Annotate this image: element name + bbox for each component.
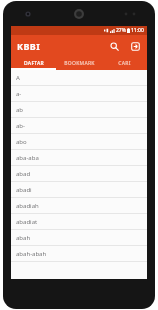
staticText: abah-abah xyxy=(16,250,47,258)
button[interactable]: ab- xyxy=(11,118,147,134)
button[interactable]: BOOKMARK xyxy=(57,56,102,70)
button[interactable]: abo xyxy=(11,134,147,150)
button[interactable]: abad xyxy=(11,166,147,182)
button[interactable]: abah-abah xyxy=(11,246,147,262)
staticText: ab xyxy=(16,106,24,114)
button[interactable]: a- xyxy=(11,86,147,102)
button[interactable]: abadiat xyxy=(11,214,147,230)
staticText: 27% xyxy=(116,27,126,34)
staticText: abah xyxy=(16,234,31,242)
staticText: abadiat xyxy=(16,218,38,226)
button[interactable]: Open entry xyxy=(128,39,142,53)
button[interactable]: abadiah xyxy=(11,198,147,214)
staticText: abo xyxy=(16,138,27,146)
button[interactable]: aba-aba xyxy=(11,150,147,166)
staticText: CARI xyxy=(118,60,131,67)
button[interactable]: DAFTAR xyxy=(11,56,57,70)
staticText: abadi xyxy=(16,186,32,194)
button[interactable]: CARI xyxy=(102,56,147,70)
staticText: abadiah xyxy=(16,202,39,210)
button[interactable]: ab xyxy=(11,102,147,118)
staticText: a- xyxy=(16,90,22,98)
staticText: KBBI xyxy=(17,40,41,52)
button[interactable]: abah xyxy=(11,230,147,246)
staticText: A xyxy=(16,74,20,82)
staticText: 11:00 xyxy=(131,27,144,34)
staticText: aba-aba xyxy=(16,154,39,162)
button[interactable]: abadi xyxy=(11,182,147,198)
staticText: DAFTAR xyxy=(24,60,44,67)
button[interactable]: A xyxy=(11,70,147,86)
staticText: BOOKMARK xyxy=(64,60,95,67)
staticText: abad xyxy=(16,170,31,178)
button[interactable]: Search xyxy=(107,39,121,53)
staticText: ab- xyxy=(16,122,25,130)
